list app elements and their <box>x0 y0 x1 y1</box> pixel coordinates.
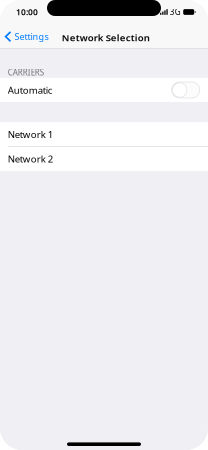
staticText: Automatic <box>8 83 53 97</box>
button[interactable]: Network 1 <box>0 122 208 147</box>
staticText: Network Selection <box>62 31 150 44</box>
button[interactable]: Automatic <box>0 78 208 102</box>
staticText: Network 2 <box>8 152 53 165</box>
staticText: Settings <box>15 30 49 43</box>
staticText: 3G <box>170 7 181 17</box>
button[interactable]: Settings <box>0 24 53 49</box>
button[interactable]: Network 2 <box>0 147 208 171</box>
staticText: CARRIERS <box>8 67 44 78</box>
staticText: 10:00 <box>16 6 38 18</box>
staticText: Network 1 <box>8 128 53 141</box>
